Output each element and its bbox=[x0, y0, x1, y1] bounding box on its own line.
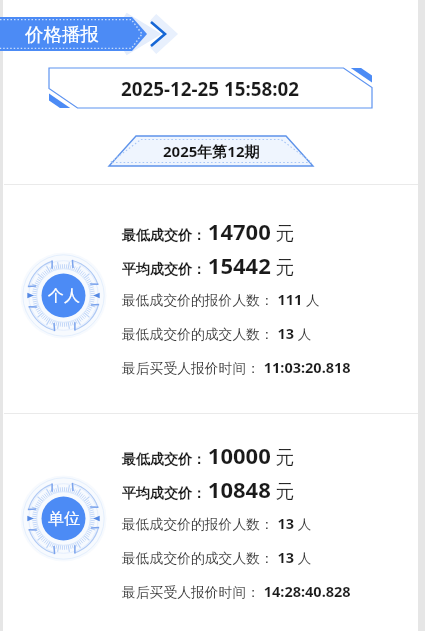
button[interactable]: 2025-12-25 15:58:02 bbox=[49, 68, 372, 108]
staticText: 单位 bbox=[48, 509, 80, 529]
button[interactable]: 单位 bbox=[0, 414, 425, 631]
staticText: 平均成交价： 10848 元 bbox=[122, 474, 295, 504]
staticText: 最后买受人报价时间： 14:28:40.828 bbox=[122, 581, 351, 601]
staticText: 价格播报 bbox=[25, 23, 99, 46]
staticText: 最后买受人报价时间： 11:03:20.818 bbox=[122, 357, 351, 377]
staticText: 2025年第12期 bbox=[163, 141, 260, 161]
staticText: 平均成交价： 15442 元 bbox=[122, 250, 295, 280]
staticText: 最低成交价的成交人数： 13 人 bbox=[122, 547, 312, 567]
button[interactable]: 单位 bbox=[20, 475, 107, 562]
staticText: 最低成交价的报价人数： 111 人 bbox=[122, 289, 320, 309]
staticText: 2025-12-25 15:58:02 bbox=[121, 76, 300, 102]
button[interactable]: 2025年第12期 bbox=[109, 136, 313, 166]
staticText: 最低成交价的报价人数： 13 人 bbox=[122, 513, 312, 533]
button[interactable]: 个人 bbox=[0, 185, 425, 413]
staticText: 最低成交价的成交人数： 13 人 bbox=[122, 323, 312, 343]
staticText: 个人 bbox=[48, 286, 80, 306]
button[interactable]: 个人 bbox=[20, 252, 107, 339]
staticText: 最低成交价： 14700 元 bbox=[122, 216, 295, 246]
staticText: 最低成交价： 10000 元 bbox=[122, 440, 295, 470]
button[interactable]: 价格播报 bbox=[0, 17, 425, 51]
